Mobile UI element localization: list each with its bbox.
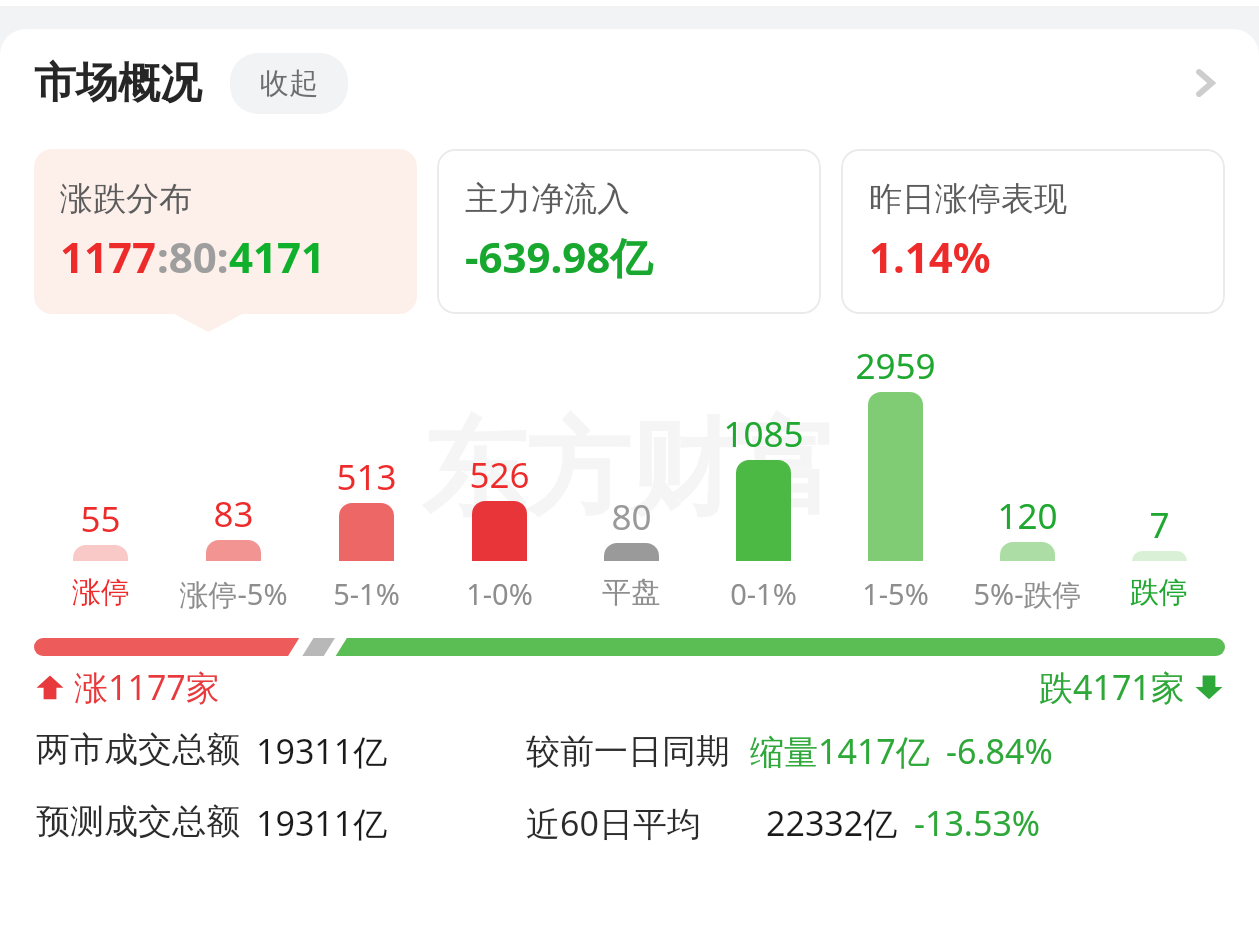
staticText: 513 — [336, 453, 397, 501]
button[interactable]: 收起 — [230, 53, 348, 114]
staticText: 预测成交总额 — [36, 800, 240, 843]
staticText: 两市成交总额 — [36, 728, 240, 771]
button[interactable]: Open market overview — [1173, 51, 1237, 115]
staticText: 5-1% — [333, 574, 400, 613]
button[interactable]: 主力净流入 — [437, 149, 821, 314]
staticText: 1-0% — [466, 574, 533, 613]
staticText: -639.98亿 — [465, 228, 653, 285]
staticText: 涨1177家 — [74, 664, 220, 710]
staticText: 缩量1417亿 — [750, 728, 930, 774]
staticText: -6.84% — [946, 728, 1053, 774]
staticText: 1.14% — [869, 228, 991, 285]
staticText: 7 — [1149, 501, 1170, 549]
staticText: 近60日平均 — [526, 800, 701, 846]
staticText: 涨跌分布 — [60, 178, 192, 220]
staticText: 收起 — [260, 65, 318, 102]
staticText: 跌4171家 — [1039, 664, 1185, 710]
staticText: 市场概况 — [34, 57, 202, 110]
staticText: 4171 — [229, 228, 326, 285]
staticText: 1085 — [723, 410, 804, 458]
staticText: 东方财富 — [422, 404, 838, 535]
button[interactable]: 涨跌分布 — [34, 149, 417, 314]
staticText: :80: — [157, 228, 229, 285]
staticText: 昨日涨停表现 — [869, 178, 1067, 220]
staticText: 80 — [611, 493, 652, 541]
staticText: 跌停 — [1130, 574, 1188, 611]
staticText: -13.53% — [914, 800, 1041, 846]
staticText: 0-1% — [730, 574, 797, 613]
staticText: 涨停-5% — [179, 574, 288, 614]
staticText: 22332亿 — [766, 800, 898, 846]
button[interactable]: 昨日涨停表现 — [841, 149, 1225, 314]
staticText: 55 — [80, 495, 121, 543]
staticText: 5%-跌停 — [973, 574, 1082, 614]
staticText: 涨停 — [72, 574, 130, 611]
staticText: 526 — [469, 451, 530, 499]
staticText: 120 — [997, 492, 1058, 540]
staticText: 主力净流入 — [465, 178, 630, 220]
staticText: 1-5% — [862, 574, 929, 613]
staticText: 19311亿 — [256, 728, 388, 774]
staticText: 1177 — [60, 228, 157, 285]
staticText: 83 — [213, 490, 254, 538]
staticText: 2959 — [855, 342, 936, 390]
staticText: 平盘 — [602, 574, 660, 611]
staticText: 19311亿 — [256, 800, 388, 846]
staticText: 较前一日同期 — [526, 730, 730, 773]
